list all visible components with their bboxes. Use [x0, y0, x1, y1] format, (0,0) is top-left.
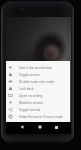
button[interactable]: Toggle bit rate [6, 106, 70, 113]
button[interactable]: Recent apps [52, 123, 60, 131]
staticText: Video Picture in Picture mode [19, 115, 64, 119]
button[interactable]: Back [18, 123, 26, 131]
button[interactable]: Disable auto only mode [6, 78, 70, 85]
button[interactable]: Select the sound track [6, 64, 70, 71]
staticText: Lock back [19, 87, 34, 91]
button[interactable]: Machine stream [6, 99, 70, 106]
button[interactable]: Lock back [6, 85, 70, 92]
button[interactable]: Open recording [6, 92, 70, 99]
button[interactable]: Toggle screen [6, 71, 70, 78]
staticText: Open recording [19, 94, 43, 98]
staticText: Machine stream [19, 101, 44, 105]
button[interactable]: Home [36, 123, 44, 131]
button[interactable]: Video Picture in Picture mode [6, 113, 70, 120]
staticText: Select the sound track [19, 66, 53, 70]
staticText: Disable auto only mode [19, 80, 55, 84]
staticText: Toggle screen [19, 73, 40, 77]
staticText: Toggle bit rate [19, 108, 41, 112]
